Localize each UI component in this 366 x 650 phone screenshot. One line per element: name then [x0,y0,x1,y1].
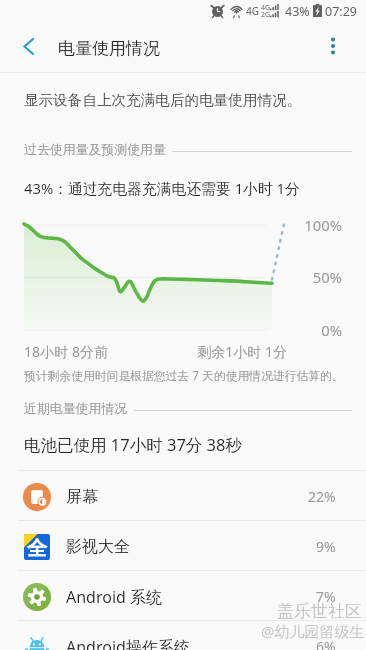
staticText: 影视大全 [66,537,130,557]
staticText: 22% [308,487,336,506]
staticText: 显示设备自上次充满电后的电量使用情况。 [24,91,302,109]
staticText: @幼儿园留级生 [261,621,365,641]
staticText: 50% [280,267,342,287]
staticText: 100% [280,215,342,235]
staticText: 全 [27,536,47,560]
staticText: 4G [246,4,259,18]
button[interactable]: More options [311,24,355,68]
staticText: 43%：通过充电器充满电还需要 1小时 1分 [24,178,300,198]
staticText: 屏幕 [66,487,98,507]
button[interactable]: Android 系统 [0,570,366,620]
button[interactable]: 全 [0,520,366,570]
staticText: 18小时 8分前 [24,342,109,361]
staticText: 近期电量使用情况 [24,401,128,417]
staticText: 2G [261,10,271,20]
staticText: 电量使用情况 [58,38,160,59]
staticText: 6% [316,637,336,650]
staticText: 07:29 [325,3,357,20]
staticText: 4G [261,3,271,13]
staticText: 盖乐世社区 [277,601,362,622]
staticText: Android操作系统 [66,636,190,650]
staticText: Android 系统 [66,586,163,608]
staticText: 电池已使用 17小时 37分 38秒 [24,433,242,456]
button[interactable]: 屏幕 [0,470,366,520]
staticText: 9% [316,537,336,556]
staticText: 过去使用量及预测使用量 [24,142,166,158]
button[interactable]: Back [6,24,50,68]
button[interactable]: Android操作系统 [0,620,366,650]
staticText: 0% [280,320,342,340]
staticText: 剩余1小时 1分 [197,342,288,361]
staticText: 预计剩余使用时间是根据您过去 7 天的使用情况进行估算的。 [24,367,344,383]
staticText: 7% [316,587,336,606]
staticText: 43% [285,3,310,20]
